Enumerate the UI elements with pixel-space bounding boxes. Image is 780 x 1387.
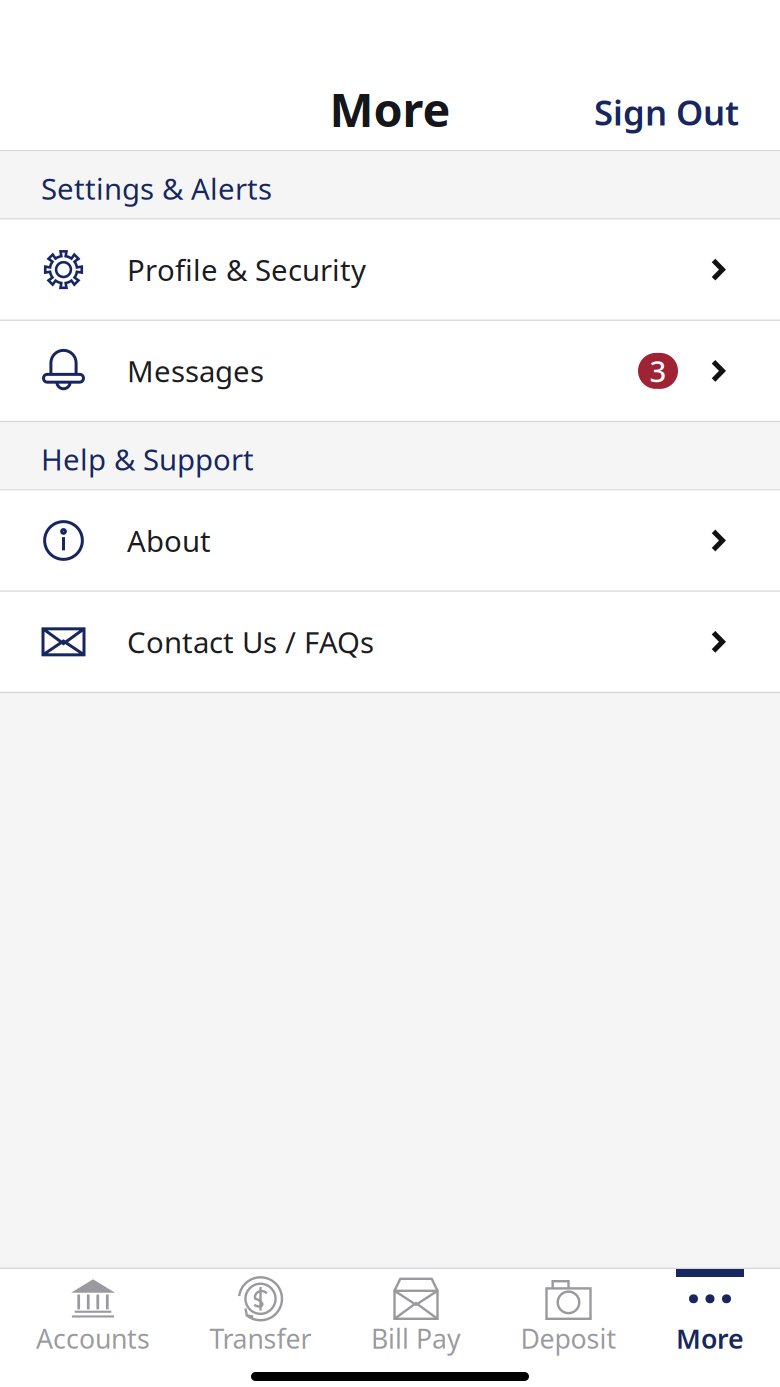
button[interactable]: Accounts (36, 1269, 150, 1366)
button[interactable]: Contact Us / FAQs (0, 592, 780, 692)
staticText: Accounts (36, 1321, 150, 1356)
staticText: Transfer (209, 1321, 311, 1356)
button[interactable]: About (0, 490, 780, 590)
button[interactable]: Sign Out (568, 79, 780, 145)
staticText: About (127, 521, 211, 560)
button[interactable]: Messages (0, 321, 780, 421)
staticText: More (329, 78, 450, 140)
staticText: Messages (127, 351, 264, 390)
staticText: Help & Support (41, 440, 254, 479)
staticText: Contact Us / FAQs (127, 622, 374, 661)
staticText: Deposit (520, 1321, 616, 1356)
button[interactable]: Profile & Security (0, 220, 780, 320)
button[interactable]: Transfer (209, 1269, 311, 1366)
button[interactable]: Bill Pay (371, 1269, 461, 1366)
staticText: Sign Out (594, 89, 739, 135)
staticText: 3 (649, 351, 666, 390)
staticText: More (676, 1321, 744, 1356)
button[interactable]: More (676, 1269, 744, 1366)
button[interactable]: Deposit (520, 1269, 616, 1366)
staticText: Bill Pay (371, 1321, 461, 1356)
staticText: Profile & Security (127, 250, 366, 289)
staticText: Settings & Alerts (41, 169, 272, 208)
